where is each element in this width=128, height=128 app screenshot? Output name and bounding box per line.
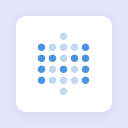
- button[interactable]: Open: [16, 16, 112, 112]
